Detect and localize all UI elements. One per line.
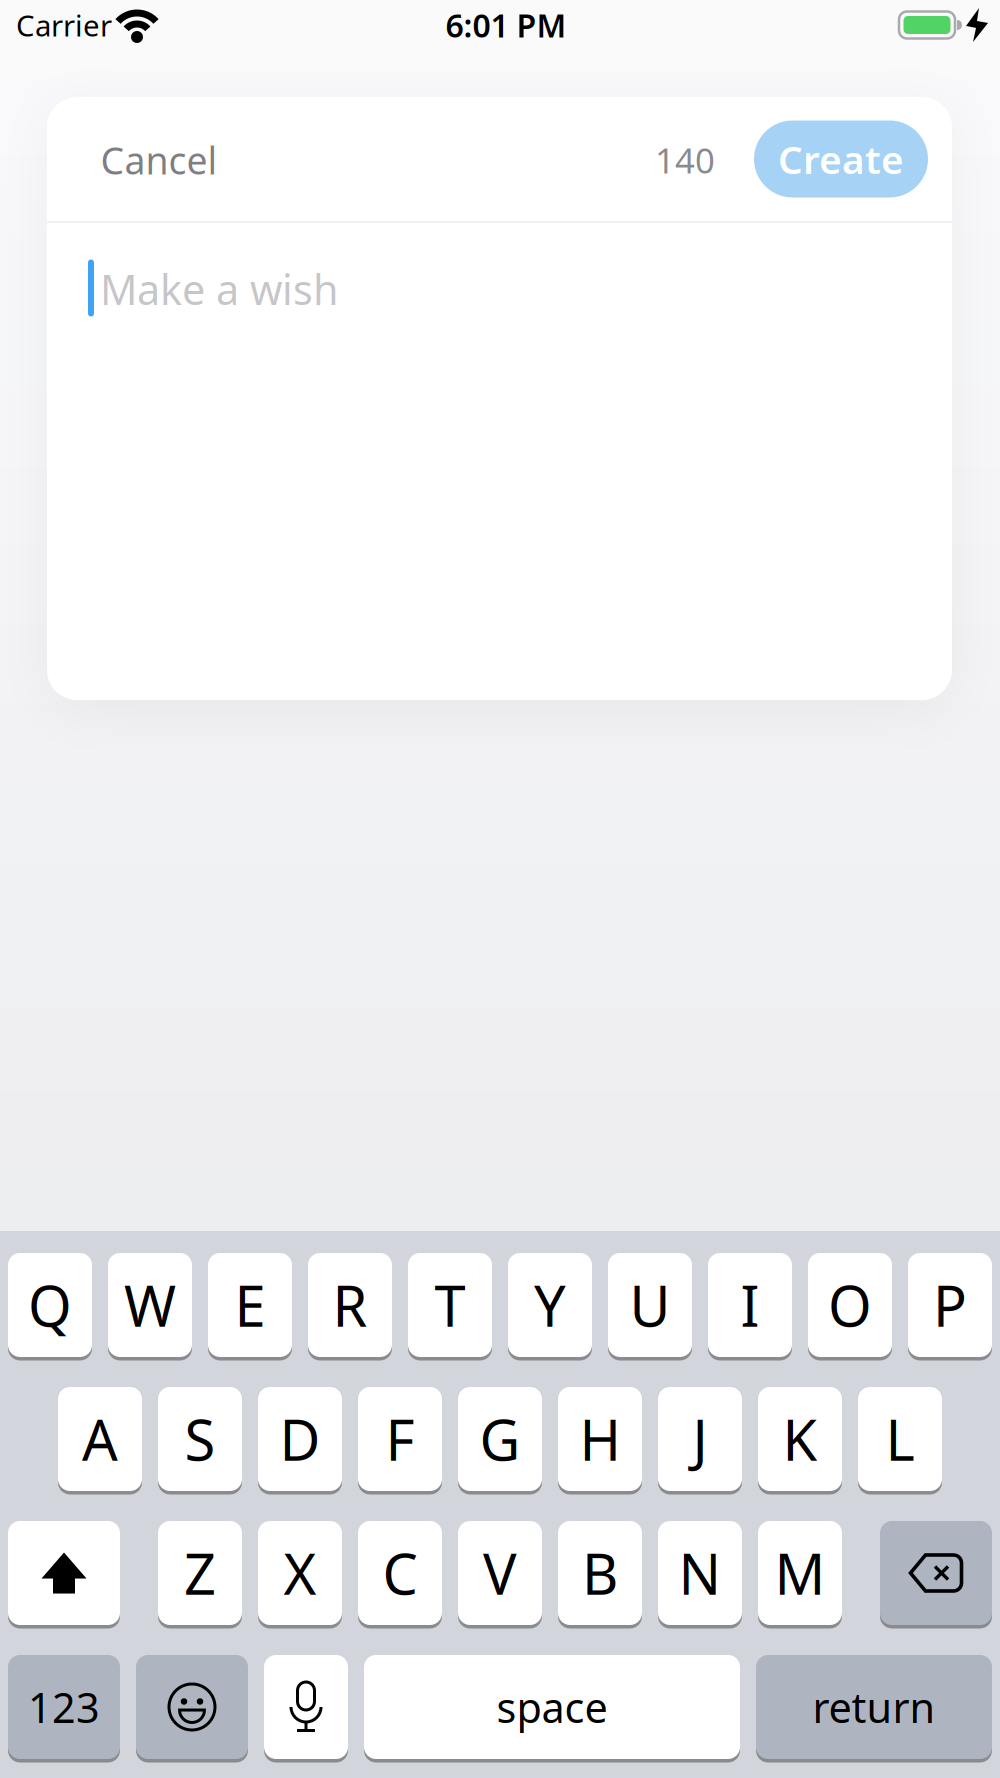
staticText: N (678, 1536, 721, 1610)
staticText: Make a wish (100, 262, 339, 316)
button[interactable]: N (658, 1521, 742, 1625)
button[interactable]: K (758, 1387, 842, 1491)
staticText: V (483, 1536, 517, 1610)
button[interactable]: Q (8, 1253, 92, 1357)
button[interactable]: H (558, 1387, 642, 1491)
staticText: Z (184, 1536, 216, 1610)
button[interactable]: Z (158, 1521, 242, 1625)
button[interactable]: F (358, 1387, 442, 1491)
button[interactable]: Y (508, 1253, 592, 1357)
button[interactable]: O (808, 1253, 892, 1357)
staticText: J (692, 1402, 707, 1476)
staticText: 140 (655, 137, 715, 183)
staticText: Create (778, 133, 904, 185)
staticText: P (933, 1268, 967, 1342)
button[interactable]: Emoji (136, 1655, 248, 1759)
button[interactable]: Cancel (100, 135, 217, 185)
staticText: O (828, 1268, 872, 1342)
staticText: A (82, 1402, 118, 1476)
button[interactable]: J (658, 1387, 742, 1491)
button[interactable]: B (558, 1521, 642, 1625)
button[interactable]: Delete (880, 1521, 992, 1625)
button[interactable]: W (108, 1253, 192, 1357)
staticText: L (885, 1402, 914, 1476)
button[interactable]: U (608, 1253, 692, 1357)
button[interactable]: I (708, 1253, 792, 1357)
staticText: S (184, 1402, 215, 1476)
staticText: Y (534, 1268, 566, 1342)
staticText: 6:01 PM (445, 4, 566, 46)
button[interactable]: 123 (8, 1655, 120, 1759)
staticText: H (579, 1402, 620, 1476)
button[interactable]: S (158, 1387, 242, 1491)
button[interactable]: E (208, 1253, 292, 1357)
staticText: F (385, 1402, 414, 1476)
staticText: K (782, 1402, 817, 1476)
staticText: 123 (28, 1680, 100, 1734)
button[interactable]: Shift (8, 1521, 120, 1625)
staticText: Carrier (16, 5, 112, 44)
staticText: W (124, 1268, 176, 1342)
button[interactable]: L (858, 1387, 942, 1491)
staticText: U (629, 1268, 670, 1342)
staticText: Cancel (100, 135, 217, 185)
staticText: Q (28, 1268, 72, 1342)
button[interactable]: Dictate (264, 1655, 348, 1759)
staticText: X (283, 1536, 316, 1610)
staticText: D (279, 1402, 320, 1476)
button[interactable]: P (908, 1253, 992, 1357)
button[interactable]: Create (754, 120, 928, 197)
button[interactable]: T (408, 1253, 492, 1357)
staticText: space (496, 1680, 607, 1734)
button[interactable]: return (756, 1655, 992, 1759)
button[interactable]: R (308, 1253, 392, 1357)
staticText: R (332, 1268, 367, 1342)
staticText: C (382, 1536, 417, 1610)
staticText: B (582, 1536, 618, 1610)
button[interactable]: X (258, 1521, 342, 1625)
button[interactable]: C (358, 1521, 442, 1625)
button[interactable]: G (458, 1387, 542, 1491)
button[interactable]: A (58, 1387, 142, 1491)
button[interactable]: space (364, 1655, 740, 1759)
button[interactable]: D (258, 1387, 342, 1491)
staticText: T (434, 1268, 465, 1342)
staticText: G (479, 1402, 520, 1476)
staticText: E (234, 1268, 265, 1342)
staticText: return (812, 1680, 935, 1734)
staticText: M (774, 1536, 825, 1610)
button[interactable]: V (458, 1521, 542, 1625)
button[interactable]: M (758, 1521, 842, 1625)
staticText: I (740, 1268, 759, 1342)
